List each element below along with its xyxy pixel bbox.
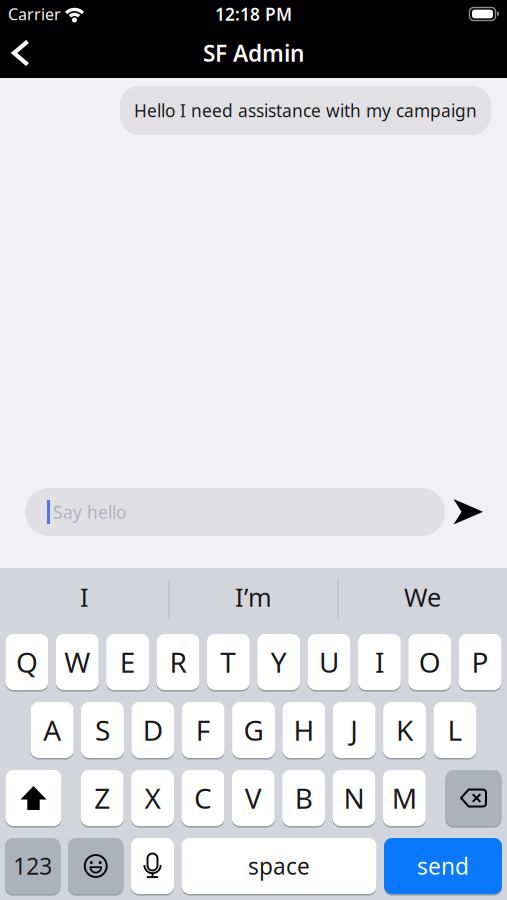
button[interactable]: D	[131, 701, 174, 759]
staticText: A	[43, 711, 61, 749]
button[interactable]: K	[383, 701, 426, 759]
staticText: M	[392, 779, 417, 817]
staticText: O	[419, 643, 441, 681]
staticText: SF Admin	[203, 38, 304, 68]
staticText: T	[220, 643, 236, 681]
staticText: Say hello	[53, 500, 126, 523]
staticText: X	[145, 779, 161, 817]
button[interactable]	[445, 499, 507, 525]
button[interactable]: G	[232, 701, 275, 759]
button[interactable]: X	[131, 769, 174, 827]
staticText: B	[295, 779, 313, 817]
staticText: W	[64, 643, 90, 681]
staticText: Y	[271, 643, 287, 681]
button[interactable]: Q	[5, 633, 48, 691]
button[interactable]: N	[333, 769, 375, 827]
staticText: send	[417, 851, 469, 881]
button[interactable]: Z	[81, 769, 124, 827]
button[interactable]: We	[342, 571, 502, 623]
staticText: L	[447, 711, 462, 749]
button[interactable]: F	[182, 701, 225, 759]
button[interactable]: T	[207, 633, 250, 691]
button[interactable]: Say hello	[25, 488, 445, 536]
button[interactable]: space	[181, 837, 376, 895]
staticText: I	[375, 643, 384, 681]
button[interactable]: V	[232, 769, 275, 827]
button[interactable]: E	[106, 633, 149, 691]
staticText: Z	[94, 779, 110, 817]
staticText: N	[343, 779, 364, 817]
button[interactable]	[0, 39, 31, 67]
button[interactable]: I	[4, 571, 164, 623]
staticText: Hello I need assistance with my campaign	[134, 99, 477, 122]
staticText: 123	[13, 851, 52, 881]
staticText: space	[248, 851, 310, 881]
button[interactable]	[68, 837, 123, 895]
button[interactable]: M	[383, 769, 426, 827]
button[interactable]: send	[384, 837, 502, 895]
button[interactable]: I’m	[173, 571, 333, 623]
staticText: V	[245, 779, 262, 817]
staticText: D	[143, 711, 163, 749]
staticText: P	[472, 643, 489, 681]
staticText: Q	[16, 643, 38, 681]
button[interactable]: H	[282, 701, 325, 759]
button[interactable]	[131, 837, 174, 895]
button[interactable]: B	[282, 769, 325, 827]
button[interactable]: O	[408, 633, 451, 691]
staticText: G	[243, 711, 263, 749]
button[interactable]	[445, 769, 501, 827]
button[interactable]: U	[308, 633, 350, 691]
staticText: 12:18 PM	[215, 2, 292, 25]
staticText: I	[80, 580, 89, 614]
staticText: E	[120, 643, 136, 681]
staticText: U	[319, 643, 339, 681]
staticText: J	[350, 711, 358, 749]
button[interactable]: W	[56, 633, 99, 691]
staticText: H	[293, 711, 314, 749]
button[interactable]: P	[459, 633, 502, 691]
button[interactable]: L	[433, 701, 476, 759]
button[interactable]: R	[157, 633, 199, 691]
button[interactable]	[5, 769, 61, 827]
staticText: R	[169, 643, 186, 681]
button[interactable]: J	[333, 701, 376, 759]
staticText: C	[194, 779, 212, 817]
staticText: S	[95, 711, 110, 749]
button[interactable]: 123	[5, 837, 60, 895]
staticText: F	[196, 711, 211, 749]
button[interactable]: S	[81, 701, 124, 759]
staticText: I’m	[235, 580, 272, 614]
button[interactable]: Y	[257, 633, 300, 691]
button[interactable]: C	[181, 769, 224, 827]
staticText: Carrier	[8, 3, 61, 25]
staticText: K	[396, 711, 413, 749]
button[interactable]: A	[31, 701, 74, 759]
staticText: We	[404, 580, 441, 614]
button[interactable]: I	[358, 633, 401, 691]
